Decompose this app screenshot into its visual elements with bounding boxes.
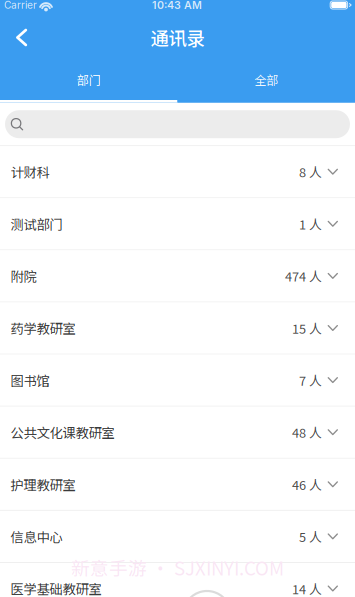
staticText: 10:43 AM — [152, 0, 202, 11]
staticText: 附院 — [10, 266, 36, 286]
staticText: 部门 — [77, 71, 101, 88]
staticText: 15 人 — [292, 319, 322, 337]
staticText: 医学基础教研室 — [10, 579, 101, 597]
button[interactable]: 图书馆 — [0, 355, 355, 407]
staticText: 护理教研室 — [10, 475, 75, 494]
staticText: 5 人 — [299, 527, 322, 546]
staticText: 计财科 — [10, 162, 49, 181]
staticText: 图书馆 — [10, 370, 49, 390]
staticText: 48 人 — [292, 423, 322, 441]
button[interactable]: Search — [5, 110, 350, 138]
button[interactable]: 护理教研室 — [0, 459, 355, 511]
button[interactable]: 测试部门 — [0, 198, 355, 250]
button[interactable]: 全部 — [177, 59, 355, 102]
staticText: 1 人 — [299, 215, 322, 233]
staticText: 通讯录 — [150, 24, 204, 51]
button[interactable]: 公共文化课教研室 — [0, 407, 355, 459]
staticText: 46 人 — [292, 475, 322, 494]
staticText: 新意手游 · SJXINYI.COM — [71, 554, 284, 581]
staticText: 7 人 — [299, 371, 322, 389]
button[interactable]: 信息中心 — [0, 511, 355, 563]
staticText: 测试部门 — [10, 214, 62, 233]
button[interactable]: Back — [0, 15, 50, 59]
staticText: 全部 — [254, 71, 278, 88]
staticText: 公共文化课教研室 — [10, 423, 114, 442]
button[interactable]: 部门 — [0, 59, 177, 102]
staticText: Carrier — [4, 0, 37, 11]
staticText: 14 人 — [292, 579, 322, 597]
button[interactable]: 药学教研室 — [0, 302, 355, 355]
staticText: 8 人 — [299, 162, 322, 181]
button[interactable]: 医学基础教研室 — [0, 563, 355, 597]
staticText: 474 人 — [285, 267, 322, 285]
staticText: 信息中心 — [10, 527, 62, 546]
button[interactable]: 计财科 — [0, 146, 355, 198]
staticText: 药学教研室 — [10, 318, 75, 338]
button[interactable]: 附院 — [0, 250, 355, 302]
